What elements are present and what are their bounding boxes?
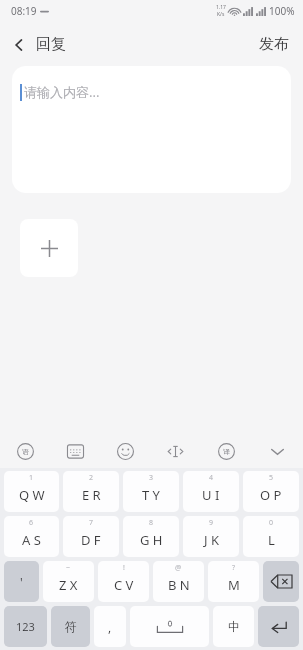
staticText: T Y xyxy=(142,486,160,504)
button[interactable]: 4 xyxy=(183,471,239,512)
button[interactable]: Space xyxy=(130,606,209,647)
staticText: Z X xyxy=(59,576,78,594)
staticText: L xyxy=(268,531,275,549)
button[interactable]: 发布 xyxy=(245,27,303,62)
button[interactable]: 8 xyxy=(123,516,179,557)
button[interactable]: ! xyxy=(98,561,149,602)
staticText: 译 xyxy=(223,447,230,456)
staticText: 请输入内容... xyxy=(24,83,100,101)
button[interactable]: ~ xyxy=(43,561,94,602)
staticText: C V xyxy=(114,576,134,594)
staticText: B N xyxy=(168,576,190,594)
staticText: 2 xyxy=(89,473,94,483)
button[interactable]: 123 xyxy=(4,606,47,647)
button[interactable]: Voice input xyxy=(0,435,50,468)
staticText: 5 xyxy=(269,473,274,483)
staticText: @ xyxy=(175,563,182,573)
button[interactable]: ? xyxy=(208,561,259,602)
staticText: O P xyxy=(260,486,282,504)
staticText: 语 xyxy=(22,447,29,456)
staticText: 8 xyxy=(149,518,154,528)
staticText: ? xyxy=(232,563,236,573)
button[interactable]: ' xyxy=(4,561,39,602)
staticText: ' xyxy=(20,574,23,590)
button[interactable]: Hide keyboard xyxy=(252,435,303,468)
staticText: 7 xyxy=(89,518,94,528)
staticText: ! xyxy=(123,563,125,573)
button[interactable]: 6 xyxy=(4,516,59,557)
staticText: 符 xyxy=(65,619,77,634)
button[interactable]: Text cursor xyxy=(150,435,201,468)
button[interactable]: 中 xyxy=(213,606,254,647)
staticText: 6 xyxy=(29,518,34,528)
staticText: 0 xyxy=(269,518,274,528)
button[interactable]: , xyxy=(94,606,126,647)
staticText: 回复 xyxy=(36,35,66,54)
staticText: 123 xyxy=(16,619,35,634)
staticText: 发布 xyxy=(259,35,289,54)
button[interactable]: 回复 xyxy=(0,27,78,62)
button[interactable]: Emoji xyxy=(100,435,150,468)
staticText: E R xyxy=(82,486,101,504)
staticText: 中 xyxy=(228,619,240,634)
staticText: G H xyxy=(140,531,163,549)
staticText: 4 xyxy=(209,473,214,483)
button[interactable]: Backspace xyxy=(263,561,299,602)
button[interactable]: 0 xyxy=(243,516,299,557)
button[interactable]: Enter xyxy=(258,606,299,647)
button[interactable]: Add image xyxy=(20,219,78,277)
button[interactable]: 5 xyxy=(243,471,299,512)
button[interactable]: Translate xyxy=(201,435,252,468)
staticText: A S xyxy=(22,531,41,549)
button[interactable]: 9 xyxy=(183,516,239,557)
staticText: M xyxy=(228,576,240,594)
button[interactable]: @ xyxy=(153,561,204,602)
button[interactable]: Keyboard layout xyxy=(50,435,100,468)
staticText: 1 xyxy=(29,473,34,483)
staticText: 1.17 xyxy=(216,4,226,11)
staticText: 3 xyxy=(149,473,154,483)
staticText: Q W xyxy=(19,486,45,504)
button[interactable]: 符 xyxy=(51,606,90,647)
button[interactable]: 请输入内容... xyxy=(12,66,291,193)
staticText: D F xyxy=(81,531,101,549)
button[interactable]: 2 xyxy=(63,471,119,512)
staticText: 9 xyxy=(209,518,214,528)
button[interactable]: 7 xyxy=(63,516,119,557)
staticText: , xyxy=(108,619,112,635)
staticText: ~ xyxy=(66,563,71,573)
button[interactable]: 1 xyxy=(4,471,59,512)
staticText: 08:19 xyxy=(11,4,37,18)
staticText: U I xyxy=(202,486,220,504)
staticText: J K xyxy=(204,531,219,549)
staticText: K/s xyxy=(217,11,225,18)
staticText: 100% xyxy=(269,4,295,18)
button[interactable]: 3 xyxy=(123,471,179,512)
